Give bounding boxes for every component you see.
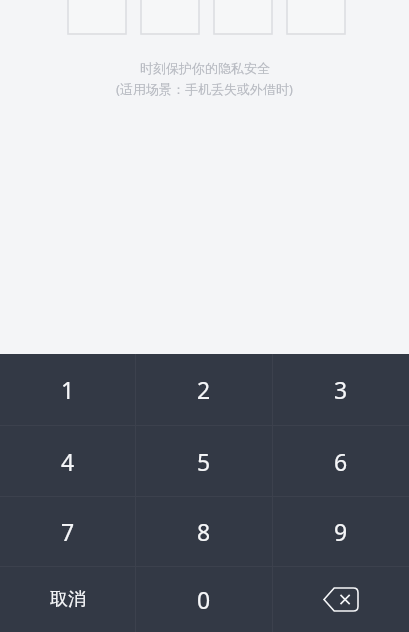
staticText: 3: [334, 374, 348, 405]
staticText: 2: [197, 374, 211, 405]
button[interactable]: Backspace: [273, 567, 409, 632]
staticText: 1: [61, 374, 75, 405]
staticText: 取消: [50, 588, 86, 611]
staticText: 6: [334, 446, 348, 477]
button[interactable]: 取消: [0, 567, 135, 632]
button[interactable]: 4: [0, 426, 135, 496]
button[interactable]: 1: [0, 354, 135, 425]
button[interactable]: 3: [273, 354, 409, 425]
staticText: (适用场景：手机丢失或外借时): [116, 80, 293, 98]
staticText: 0: [197, 584, 211, 615]
staticText: 8: [197, 516, 211, 547]
button[interactable]: 2: [136, 354, 272, 425]
staticText: 9: [334, 516, 348, 547]
button[interactable]: 8: [136, 497, 272, 566]
staticText: 时刻保护你的隐私安全: [140, 60, 270, 76]
button[interactable]: 9: [273, 497, 409, 566]
staticText: 7: [61, 516, 75, 547]
button[interactable]: 6: [273, 426, 409, 496]
button[interactable]: 5: [136, 426, 272, 496]
staticText: 4: [61, 446, 75, 477]
button[interactable]: 0: [136, 567, 272, 632]
staticText: 5: [197, 446, 211, 477]
button[interactable]: 7: [0, 497, 135, 566]
